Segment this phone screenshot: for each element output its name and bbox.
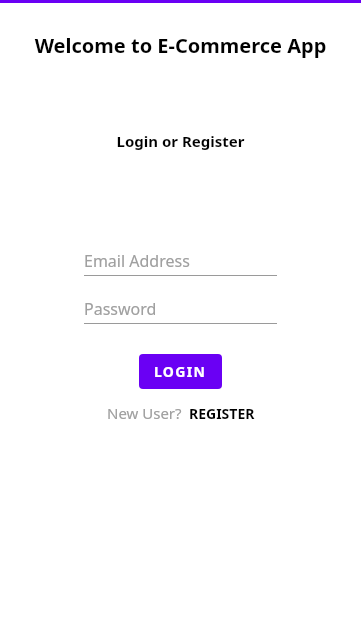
staticText: LOGIN [154, 362, 207, 381]
staticText: New User? [107, 403, 182, 423]
staticText: Password [84, 298, 157, 320]
button[interactable]: Password [84, 298, 277, 324]
staticText: REGISTER [189, 404, 255, 423]
button[interactable]: LOGIN [139, 354, 222, 389]
staticText: Email Address [84, 250, 190, 272]
button[interactable]: Email Address [84, 250, 277, 276]
staticText: Login or Register [0, 131, 361, 151]
button[interactable]: REGISTER [189, 404, 255, 423]
staticText: Welcome to E-Commerce App [0, 32, 361, 59]
